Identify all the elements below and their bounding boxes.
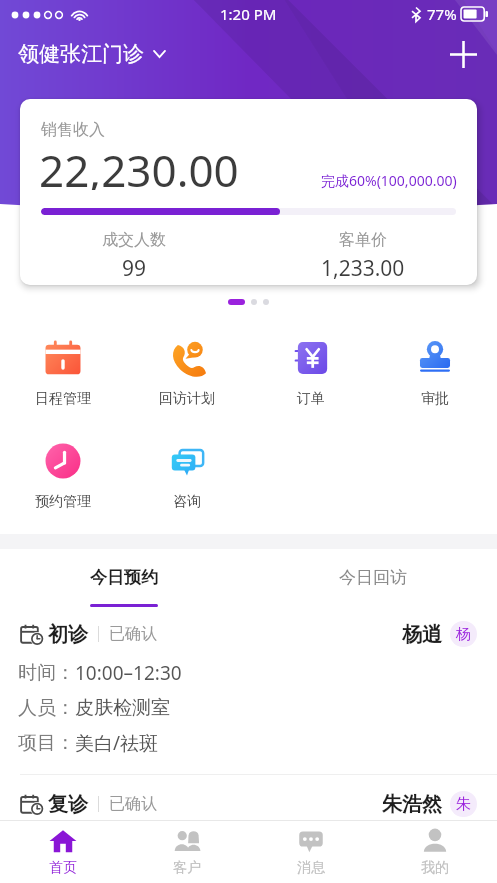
staticText: 1,233.00 — [321, 254, 405, 283]
staticText: 美白/祛斑 — [75, 730, 159, 756]
button[interactable]: 今日预约 — [0, 549, 248, 607]
staticText: 10:00–12:30 — [75, 660, 182, 686]
button[interactable]: 预约管理 — [0, 442, 125, 511]
button[interactable]: Add — [443, 34, 483, 74]
staticText: 咨询 — [173, 493, 201, 511]
button[interactable]: 初诊 — [0, 607, 497, 774]
staticText: 人员： — [18, 696, 75, 720]
staticText: 预约管理 — [35, 493, 91, 511]
staticText: 77% — [427, 4, 457, 24]
staticText: 初诊 — [48, 622, 88, 647]
staticText: 1:20 PM — [220, 4, 277, 24]
staticText: 项目： — [18, 731, 75, 755]
button[interactable]: 消息 — [249, 821, 373, 883]
button[interactable]: 首页 — [0, 821, 125, 883]
staticText: 朱浩然 — [382, 792, 442, 817]
staticText: 已确认 — [109, 624, 157, 644]
staticText: 时间： — [18, 661, 75, 685]
staticText: 成交人数 — [102, 230, 166, 250]
staticText: 今日回访 — [339, 567, 407, 588]
staticText: 已确认 — [109, 794, 157, 814]
button[interactable]: 领健张江门诊 — [16, 35, 168, 73]
staticText: 22,230.00 — [39, 140, 239, 190]
staticText: 皮肤检测室 — [75, 696, 170, 720]
staticText: 杨 — [456, 625, 471, 644]
staticText: 回访计划 — [159, 390, 215, 408]
button[interactable]: 今日回访 — [248, 549, 497, 607]
staticText: 客户 — [173, 859, 201, 877]
staticText: 99 — [122, 254, 147, 283]
staticText: 完成60%(100,000.00) — [321, 171, 457, 190]
button[interactable]: 我的 — [373, 821, 497, 883]
staticText: 日程管理 — [35, 390, 91, 408]
staticText: 客单价 — [339, 230, 387, 250]
staticText: 我的 — [421, 859, 449, 877]
staticText: 杨逍 — [402, 622, 442, 647]
staticText: 销售收入 — [41, 120, 105, 140]
button[interactable]: 销售收入 — [20, 99, 477, 285]
button[interactable]: 客户 — [125, 821, 249, 883]
staticText: 领健张江门诊 — [18, 41, 144, 67]
staticText: 订单 — [297, 390, 325, 408]
staticText: 首页 — [49, 859, 77, 877]
staticText: 消息 — [297, 859, 325, 877]
staticText: 复诊 — [48, 792, 88, 817]
staticText: 审批 — [421, 390, 449, 408]
button[interactable]: 日程管理 — [0, 339, 125, 408]
staticText: 今日预约 — [90, 567, 158, 588]
button[interactable]: 咨询 — [125, 442, 249, 511]
button[interactable]: 订单 — [249, 339, 373, 408]
staticText: 朱 — [456, 795, 471, 814]
button[interactable]: 回访计划 — [125, 339, 249, 408]
button[interactable]: 审批 — [373, 339, 497, 408]
